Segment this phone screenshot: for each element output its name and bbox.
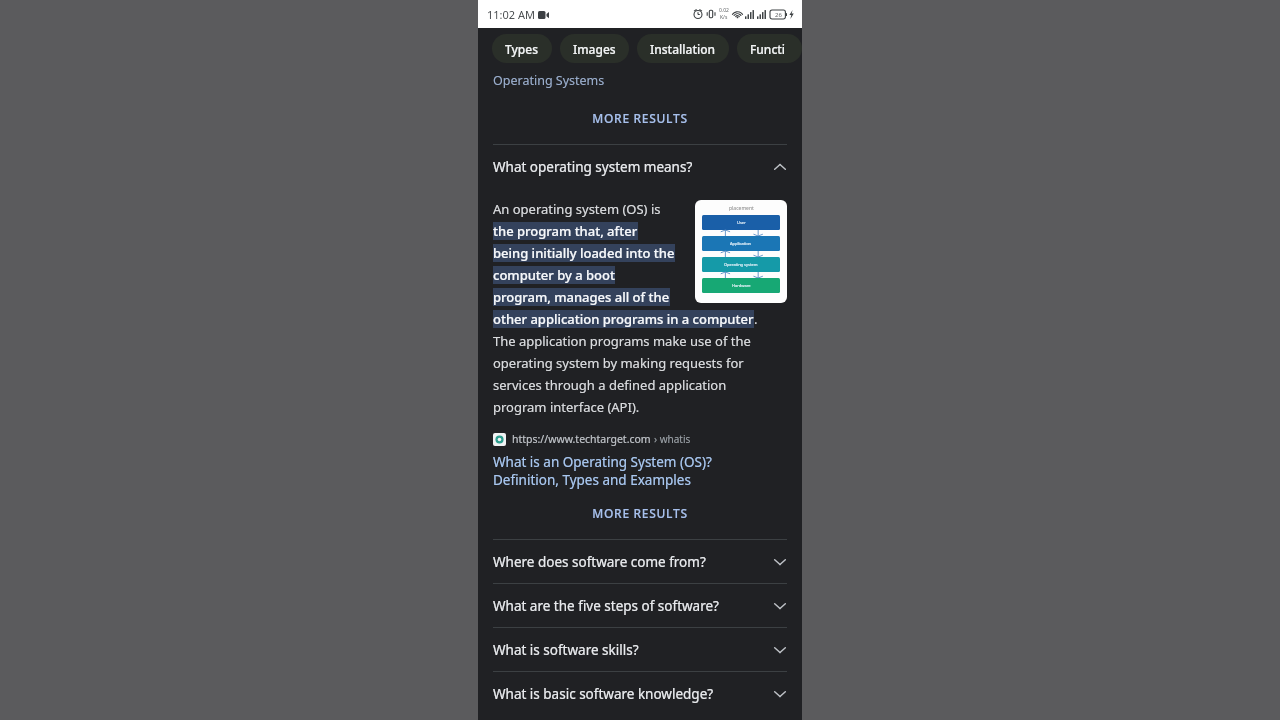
button[interactable]: What is software skills?	[493, 628, 787, 671]
staticText: the program that, after	[493, 222, 638, 240]
staticText: Installation	[650, 41, 716, 57]
staticText: 0.02	[719, 7, 729, 14]
staticText: The application programs make use of the	[493, 332, 751, 350]
other: Expand	[773, 643, 787, 657]
staticText: 11:02 AM	[487, 7, 535, 22]
staticText: Images	[573, 41, 616, 57]
staticText: Operating Systems	[493, 72, 605, 89]
button[interactable]: Where does software come from?	[493, 540, 787, 583]
button[interactable]: Diagram of operating system placement	[695, 200, 787, 303]
other: Collapse	[773, 160, 787, 174]
staticText: being initially loaded into the	[493, 244, 675, 262]
staticText: operating system by making requests for	[493, 354, 744, 372]
staticText: What is software skills?	[493, 641, 773, 659]
button[interactable]: What are the five steps of software?	[493, 584, 787, 627]
staticText: https://www.techtarget.com	[512, 432, 651, 446]
button[interactable]: Installation	[637, 34, 729, 63]
button[interactable]: MORE RESULTS	[493, 110, 787, 126]
button[interactable]: What is basic software knowledge?	[493, 672, 787, 715]
staticText: Application	[730, 241, 752, 246]
staticText: › whatis	[654, 432, 691, 446]
staticText: Where does software come from?	[493, 553, 773, 571]
button[interactable]: What operating system means?	[493, 145, 787, 188]
other: Expand	[773, 599, 787, 613]
staticText: other application programs in a computer	[493, 310, 754, 328]
staticText: An operating system (OS) is	[493, 200, 661, 218]
staticText: program interface (API).	[493, 398, 640, 416]
staticText: What is basic software knowledge?	[493, 685, 773, 703]
staticText: What operating system means?	[493, 158, 773, 176]
other: Expand	[773, 687, 787, 701]
staticText: .	[754, 310, 758, 328]
button[interactable]: Types	[492, 34, 552, 63]
button[interactable]: MORE RESULTS	[493, 505, 787, 521]
button[interactable]: Function	[737, 34, 802, 63]
staticText: Hardware	[732, 283, 751, 288]
staticText: Types	[505, 41, 539, 57]
staticText: placement	[729, 205, 754, 212]
other: Expand	[773, 555, 787, 569]
button[interactable]: Images	[560, 34, 629, 63]
button[interactable]: https://www.techtarget.com	[493, 432, 787, 489]
staticText: 26	[775, 11, 782, 19]
staticText: MORE RESULTS	[592, 110, 688, 126]
staticText: services through a defined application	[493, 376, 727, 394]
staticText: Function	[750, 41, 789, 57]
staticText: computer by a boot	[493, 266, 615, 284]
staticText: What are the five steps of software?	[493, 597, 773, 615]
staticText: program, manages all of the	[493, 288, 670, 306]
staticText: K/s	[720, 14, 728, 21]
staticText: What is an Operating System (OS)?	[493, 453, 712, 471]
staticText: Operating system	[724, 262, 758, 267]
staticText: MORE RESULTS	[592, 505, 688, 521]
staticText: User	[737, 220, 746, 225]
staticText: Definition, Types and Examples	[493, 471, 691, 489]
